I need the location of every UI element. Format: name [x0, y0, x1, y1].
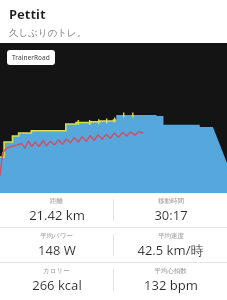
button[interactable]: Pettit [0, 0, 227, 43]
button[interactable]: 平均心拍数 [114, 263, 227, 297]
staticText: 30:17 [154, 206, 188, 224]
staticText: 148 W [38, 241, 76, 259]
button[interactable]: 移動時間 [114, 193, 227, 227]
staticText: 平均心拍数 [154, 267, 187, 275]
staticText: 久しぶりのトレ。 [9, 27, 87, 39]
button[interactable]: 平均パワー [0, 228, 113, 262]
staticText: 42.5 km/時 [137, 241, 204, 259]
staticText: 266 kcal [32, 276, 82, 294]
button[interactable]: 距離 [0, 193, 113, 227]
staticText: 移動時間 [158, 197, 184, 205]
staticText: カロリー [43, 267, 70, 275]
staticText: TrainerRoad [12, 53, 50, 62]
staticText: Pettit [9, 5, 46, 23]
staticText: 21.42 km [29, 206, 85, 224]
staticText: 132 bpm [144, 276, 198, 294]
button[interactable]: TrainerRoad [7, 50, 55, 65]
button[interactable]: カロリー [0, 263, 113, 297]
staticText: 平均パワー [40, 232, 73, 240]
button[interactable]: TrainerRoad [0, 43, 227, 193]
staticText: 平均速度 [158, 232, 184, 240]
button[interactable]: 平均速度 [114, 228, 227, 262]
staticText: 距離 [50, 197, 63, 205]
